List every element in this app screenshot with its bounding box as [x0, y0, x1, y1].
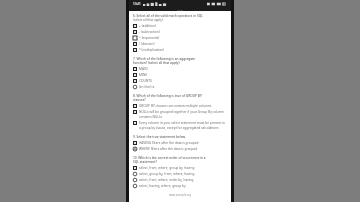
button[interactable]: select, from, where, order by, having: [133, 177, 227, 183]
staticText: COUNT(): [139, 79, 227, 83]
staticText: 10. Which is the correct order of occurr…: [133, 156, 206, 160]
button[interactable]: select, group by, from, where, having: [133, 171, 227, 177]
button[interactable]: select, having, where, group by: [133, 183, 227, 189]
staticText: select, group by, from, where, having: [139, 172, 227, 176]
button[interactable]: select, from, where, group by, having: [133, 165, 227, 171]
staticText: 6. Select all of the valid math operator…: [133, 14, 203, 18]
staticText: 9. Select the true statement below.: [133, 135, 186, 139]
button[interactable]: ^ (exponents): [133, 35, 227, 41]
staticText: ^ (exponents): [139, 36, 227, 40]
button[interactable]: / (division): [133, 41, 227, 47]
button[interactable]: COUNT(): [133, 78, 227, 84]
button[interactable]: - (subtraction): [133, 29, 227, 35]
staticText: select, having, where, group by: [139, 184, 227, 188]
staticText: HAVING filters after the data is grouped: [139, 141, 227, 145]
staticText: MIN(): [139, 73, 227, 77]
staticText: - (subtraction): [139, 30, 227, 34]
staticText: SQL statement?: [133, 160, 157, 164]
staticText: 13:41: [133, 2, 141, 6]
staticText: clauses?: [133, 98, 146, 102]
staticText: function? (select all that apply): [133, 61, 180, 65]
staticText: + (addition): [139, 24, 227, 28]
button[interactable]: * (multiplication): [133, 47, 227, 53]
button[interactable]: len line( ts: [133, 84, 227, 90]
staticText: select, from, where, group by, having: [139, 166, 227, 170]
button[interactable]: www.example.org: [169, 193, 192, 197]
button[interactable]: NULLs will be grouped together if your G…: [133, 109, 227, 120]
button[interactable]: GROUP BY clauses can contain multiple co…: [133, 103, 227, 109]
button[interactable]: Every column in your select statement mu…: [133, 120, 227, 131]
button[interactable]: HAVING filters after the data is grouped: [133, 140, 227, 146]
button[interactable]: MIN(): [133, 72, 227, 78]
staticText: select, from, where, order by, having: [139, 178, 227, 182]
button[interactable]: WHERE filters after the data is grouped: [133, 146, 227, 152]
button[interactable]: + (addition): [133, 23, 227, 29]
staticText: 8. Which of the following is true of GRO…: [133, 94, 202, 98]
staticText: (select all that apply).: [133, 18, 164, 22]
staticText: 7. Which of the following is an aggregat…: [133, 57, 196, 61]
staticText: * (multiplication): [139, 48, 227, 52]
staticText: MAX(): [139, 67, 227, 71]
staticText: GROUP BY clauses can contain multiple co…: [139, 104, 227, 108]
staticText: len line( ts: [139, 85, 227, 89]
staticText: Every column in your select statement mu…: [139, 121, 227, 130]
staticText: / (division): [139, 42, 227, 46]
button[interactable]: MAX(): [133, 66, 227, 72]
staticText: NULLs will be grouped together if your G…: [139, 110, 227, 119]
staticText: 10:41: [177, 8, 184, 11]
staticText: WHERE filters after the data is grouped: [139, 147, 227, 151]
